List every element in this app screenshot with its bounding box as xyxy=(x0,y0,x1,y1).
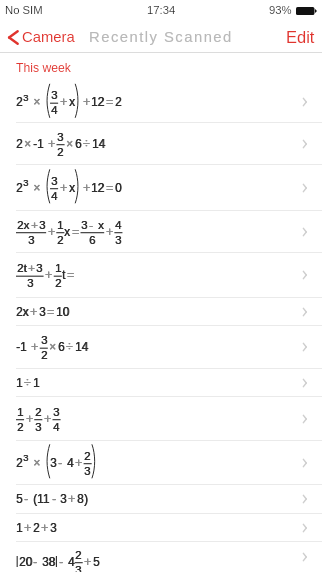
button[interactable]: 1 xyxy=(0,397,322,441)
staticText: 2 xyxy=(16,456,23,469)
button[interactable]: 20 xyxy=(0,542,322,572)
staticText: 1 xyxy=(16,521,23,534)
staticText: 11 xyxy=(37,492,50,505)
staticText: 1 xyxy=(17,406,24,419)
staticText: + xyxy=(31,219,38,232)
button[interactable]: 2t xyxy=(0,253,322,298)
button[interactable]: Camera xyxy=(8,29,75,46)
staticText: × xyxy=(49,340,56,353)
staticText: 4 xyxy=(51,190,58,203)
staticText: + xyxy=(26,412,33,425)
staticText: 38 xyxy=(42,555,56,568)
staticText: 2 xyxy=(16,181,23,194)
button[interactable]: 2 xyxy=(0,165,322,211)
staticText: 17:34 xyxy=(147,4,176,17)
staticText: = xyxy=(47,305,54,318)
staticText: x xyxy=(69,181,75,194)
staticText: 2 xyxy=(16,137,23,150)
staticText: 2 xyxy=(17,421,24,434)
staticText: 2 xyxy=(57,146,64,159)
staticText: 2 xyxy=(41,349,48,362)
staticText: Camera xyxy=(22,29,75,46)
staticText: 6 xyxy=(76,137,83,150)
staticText: × xyxy=(30,95,44,108)
staticText: 3 xyxy=(57,131,64,144)
staticText: + xyxy=(24,521,31,534)
staticText: 12 xyxy=(91,181,105,194)
staticText: 14 xyxy=(92,137,106,150)
staticText: + xyxy=(44,412,51,425)
button[interactable]: 2 xyxy=(0,123,322,165)
button[interactable]: 2x xyxy=(0,298,322,326)
staticText: - xyxy=(58,456,62,469)
staticText: 1 xyxy=(57,219,64,232)
staticText: = xyxy=(68,268,75,281)
staticText: 3 xyxy=(85,465,92,478)
staticText: 11 xyxy=(37,492,50,505)
staticText: + xyxy=(45,268,52,281)
staticText: + xyxy=(83,181,90,194)
staticText: 3 xyxy=(51,89,58,102)
button[interactable]: 1 xyxy=(0,369,322,397)
staticText: + xyxy=(28,262,35,275)
staticText: 2x xyxy=(17,219,30,232)
button[interactable]: 1 xyxy=(0,514,322,542)
button[interactable]: 2 xyxy=(0,441,322,485)
staticText: 3 xyxy=(51,175,58,188)
staticText: 3 xyxy=(35,421,42,434)
staticText: 3 xyxy=(23,177,29,188)
staticText: + xyxy=(45,268,52,281)
button[interactable]: -1 xyxy=(0,326,322,369)
staticText: x xyxy=(69,95,75,108)
button[interactable]: 2x xyxy=(0,211,322,253)
staticText: 3 xyxy=(51,89,58,102)
staticText: 2t xyxy=(17,262,27,275)
staticText: 6 xyxy=(58,340,65,353)
staticText: 2 xyxy=(17,421,24,434)
staticText: 1 xyxy=(16,376,23,389)
staticText: 3 xyxy=(50,521,57,534)
staticText: 3 xyxy=(53,406,60,419)
button[interactable]: Edit xyxy=(286,28,315,46)
staticText: + xyxy=(48,225,55,238)
staticText: 3 xyxy=(41,334,48,347)
staticText: 3 xyxy=(51,175,58,188)
staticText: 3 xyxy=(28,234,35,247)
staticText: 3 xyxy=(53,406,60,419)
staticText: ( xyxy=(33,492,37,505)
staticText: 1 xyxy=(17,406,24,419)
staticText: 3 xyxy=(41,334,48,347)
staticText: 3 xyxy=(35,421,42,434)
staticText: 10 xyxy=(56,305,70,318)
staticText: 2 xyxy=(17,421,24,434)
staticText: 3 xyxy=(39,305,46,318)
staticText: 2x xyxy=(17,219,30,232)
staticText: 2 xyxy=(75,549,82,562)
staticText: = xyxy=(106,95,113,108)
staticText: 6 xyxy=(89,234,96,247)
button[interactable]: 5 xyxy=(0,485,322,514)
staticText: 1 xyxy=(33,376,40,389)
button[interactable]: 2 xyxy=(0,82,322,123)
staticText: x xyxy=(64,225,70,238)
staticText: 2 xyxy=(115,95,122,108)
staticText: - xyxy=(52,492,56,505)
staticText: 2 xyxy=(16,181,23,194)
staticText: 1 xyxy=(55,262,62,275)
staticText: x xyxy=(69,181,75,194)
staticText: 2 xyxy=(84,450,91,463)
staticText: 12 xyxy=(91,95,105,108)
staticText: x xyxy=(98,219,104,232)
staticText: 3 xyxy=(35,421,42,434)
staticText: -1 xyxy=(16,340,27,353)
staticText: + xyxy=(83,95,90,108)
staticText: + xyxy=(60,95,67,108)
staticText: 14 xyxy=(76,340,90,353)
staticText: 4 xyxy=(51,104,58,117)
staticText: 3 xyxy=(81,219,88,232)
staticText: 2 xyxy=(116,95,123,108)
staticText: 4 xyxy=(53,421,60,434)
staticText: + xyxy=(45,268,52,281)
staticText: 3 xyxy=(39,219,46,232)
staticText: 3 xyxy=(36,262,43,275)
